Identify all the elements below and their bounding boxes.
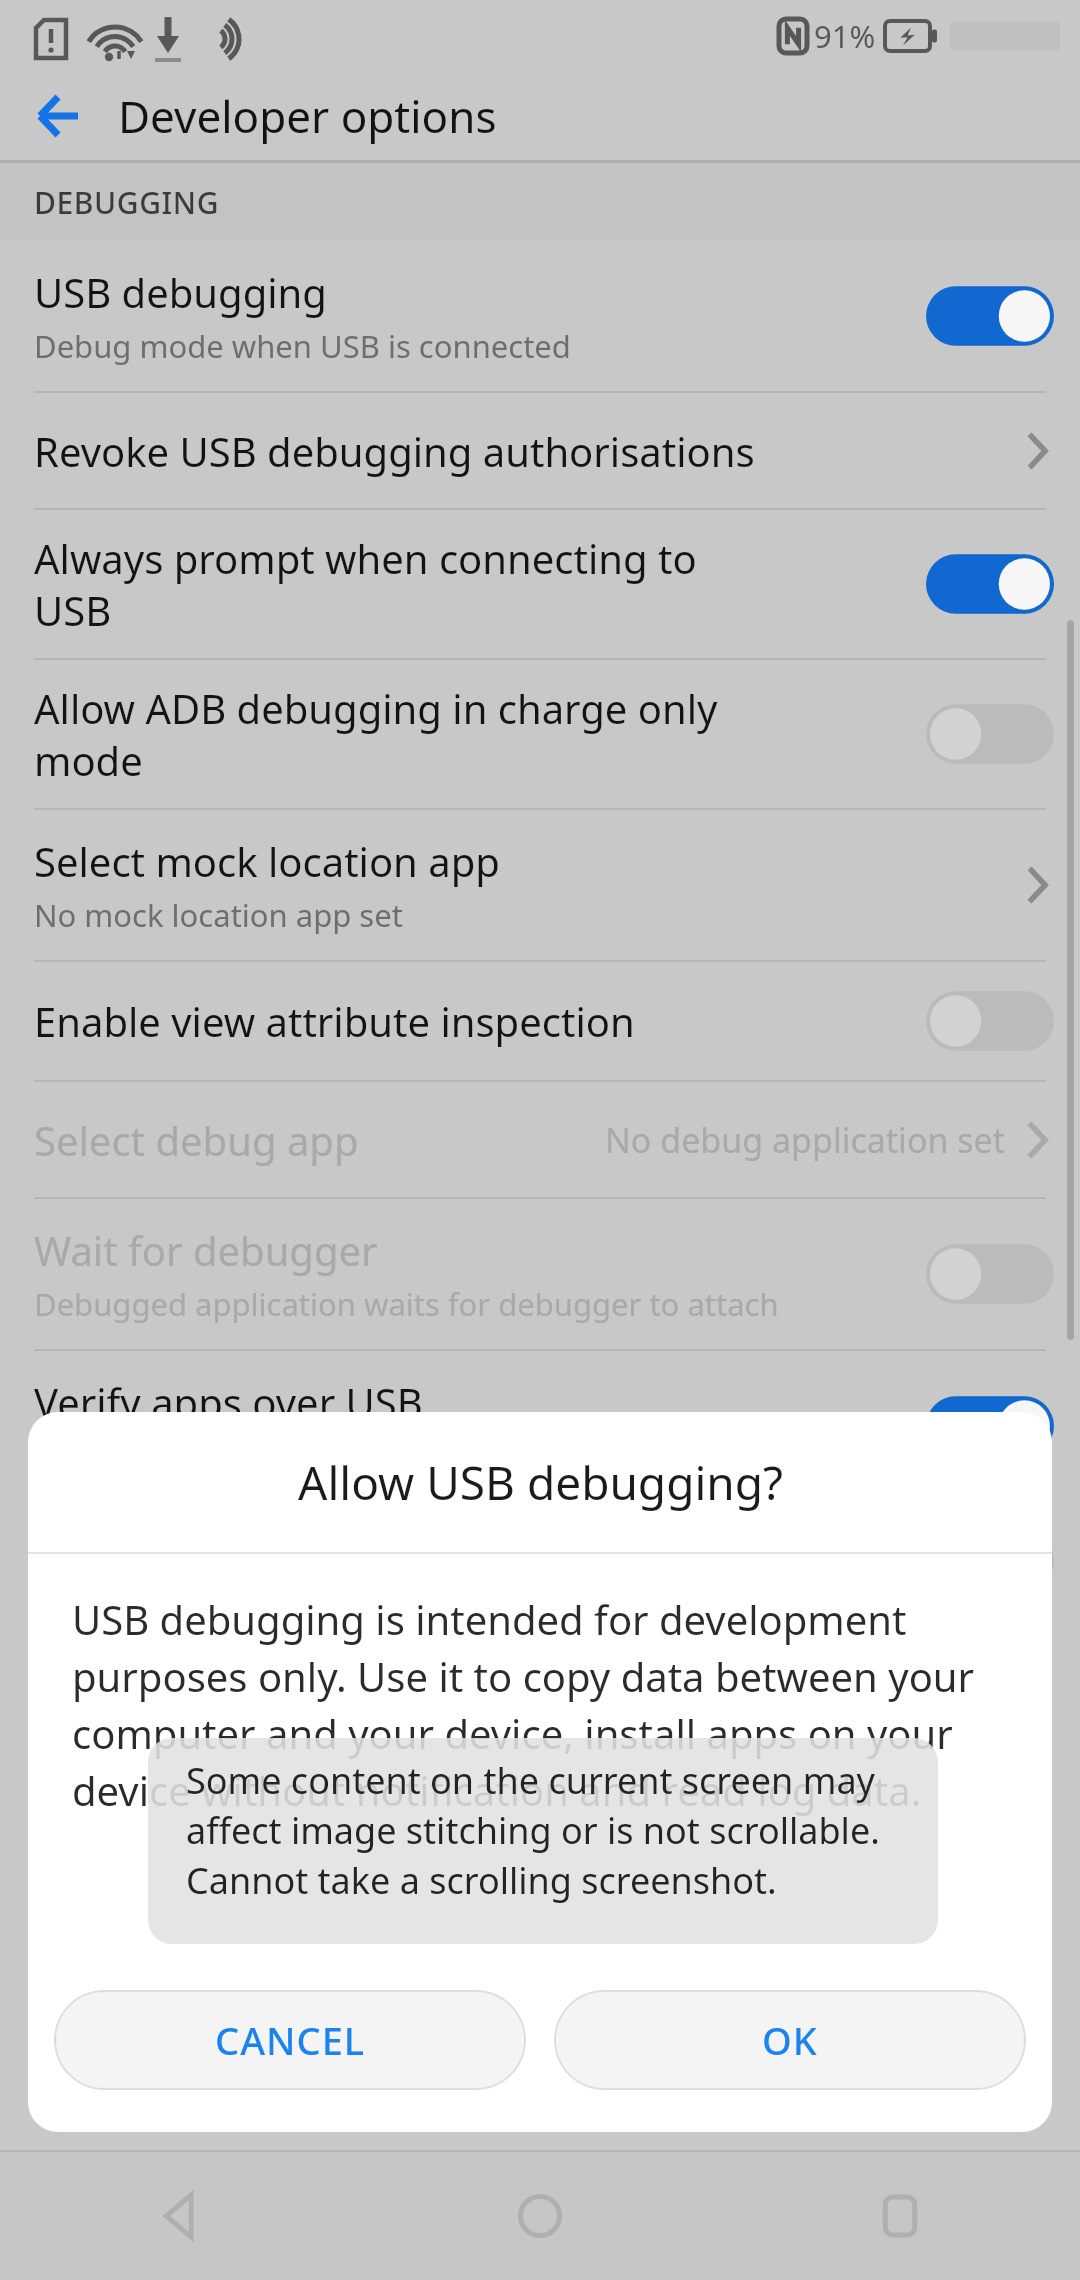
button[interactable]: CANCEL [54,1990,526,2090]
button[interactable]: Revoke USB debugging authorisations [0,393,1080,508]
staticText: 91% [814,15,876,57]
button[interactable]: Toggle off [926,696,1054,772]
button[interactable]: Toggle off [926,1523,1054,1599]
button[interactable]: Toggle off [926,983,1054,1059]
staticText: Some content on the current screen may a… [186,1756,914,1905]
staticText: Check apps installed via ADB/ADT for har… [34,1435,855,1477]
button[interactable]: Back [18,76,98,156]
staticText: Debugged application waits for debugger … [34,1283,779,1325]
staticText: USB debugging is intended for developmen… [72,1592,1012,1817]
button[interactable]: Always prompt when connecting to USB [0,510,1080,658]
button[interactable]: Toggle on [926,1388,1054,1464]
staticText: Debug mode when USB is connected [34,325,571,367]
staticText: Allow USB debugging? [298,1451,783,1514]
staticText: CANCEL [215,2014,366,2066]
staticText: No debug application set [605,1117,1006,1163]
staticText: USB debugging [34,265,327,319]
staticText: No mock location app set [34,894,403,936]
staticText: Developer options [118,86,497,146]
staticText: Revoke USB debugging authorisations [34,424,755,478]
button[interactable]: Enable Wi-Fi verbose logging [0,1503,1080,1618]
button[interactable]: Allow ADB debugging in charge only mode [0,660,1080,808]
staticText: Wait for debugger [34,1223,378,1277]
button[interactable]: OK [554,1990,1026,2090]
staticText: Select mock location app [34,834,500,888]
staticText: Verify apps over USB [34,1375,423,1429]
button[interactable]: Toggle on [926,278,1054,354]
button[interactable]: USB debugging [0,241,1080,391]
staticText: Allow ADB debugging in charge only mode [34,681,718,788]
staticText: Enable Wi-Fi verbose logging [34,1534,577,1588]
button[interactable]: Enable view attribute inspection [0,962,1080,1080]
staticText: Enable view attribute inspection [34,994,635,1048]
button[interactable]: Wait for debugger [0,1199,1080,1349]
staticText: Select debug app [34,1113,359,1167]
staticText: OK [762,2014,818,2066]
button[interactable]: Select mock location app [0,810,1080,960]
button[interactable]: Select debug app [0,1082,1080,1197]
button[interactable]: Verify apps over USB [0,1351,1080,1501]
staticText: DEBUGGING [34,182,220,223]
button[interactable]: Toggle on [926,546,1054,622]
button[interactable]: Toggle off [926,1236,1054,1312]
staticText: Always prompt when connecting to USB [34,531,697,638]
